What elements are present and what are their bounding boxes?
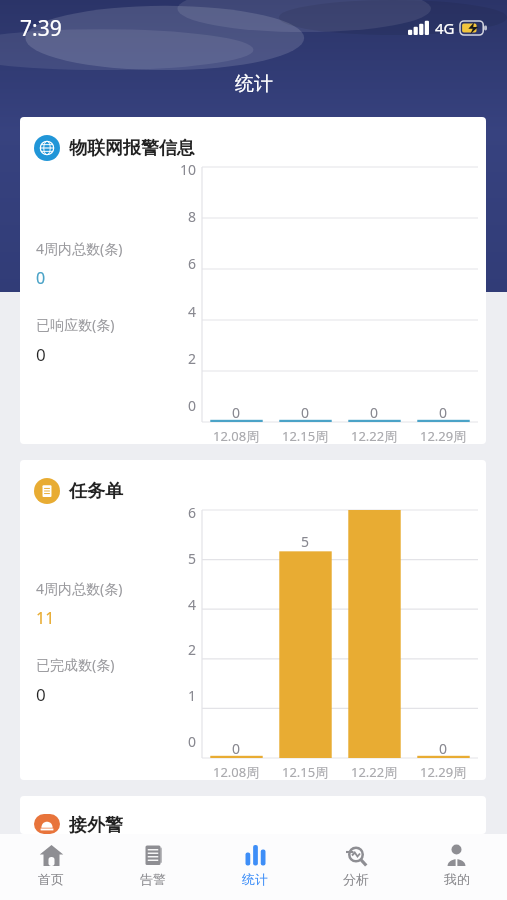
staticText: 12.15周 xyxy=(282,763,329,781)
button[interactable]: 我的 xyxy=(406,834,507,900)
other: 分析 xyxy=(343,843,368,868)
staticText: 0 xyxy=(439,403,448,422)
staticText: 2 xyxy=(170,349,196,368)
staticText: 物联网报警信息 xyxy=(69,137,195,160)
staticText: 0 xyxy=(232,403,241,422)
staticText: 0 xyxy=(170,396,196,415)
staticText: 8 xyxy=(170,207,196,226)
staticText: 4周内总数(条) xyxy=(36,579,123,598)
staticText: 10 xyxy=(170,160,196,179)
staticText: 12.08周 xyxy=(213,763,260,781)
staticText: 告警 xyxy=(140,871,166,887)
other: 告警 xyxy=(141,843,166,868)
staticText: 4周内总数(条) xyxy=(36,239,123,258)
staticText: 已完成数(条) xyxy=(36,655,115,674)
staticText: 6 xyxy=(170,503,196,522)
other: 我的 xyxy=(444,843,469,868)
staticText: 12.22周 xyxy=(351,763,398,781)
staticText: 1 xyxy=(170,686,196,705)
button[interactable]: 首页 xyxy=(0,834,102,900)
staticText: 4 xyxy=(170,595,196,614)
button[interactable]: 物联网报警信息 xyxy=(20,117,486,444)
staticText: 12.29周 xyxy=(420,427,467,445)
staticText: 0 xyxy=(301,403,310,422)
staticText: 统计 xyxy=(235,72,273,96)
staticText: 我的 xyxy=(444,871,470,887)
other: 统计 xyxy=(242,843,267,868)
staticText: 11 xyxy=(36,607,55,629)
button[interactable]: 统计 xyxy=(204,834,305,900)
staticText: 4G xyxy=(435,18,455,38)
staticText: 统计 xyxy=(242,871,268,887)
staticText: 6 xyxy=(170,254,196,273)
staticText: 5 xyxy=(301,532,310,551)
button[interactable]: 告警 xyxy=(102,834,204,900)
staticText: 0 xyxy=(170,732,196,751)
staticText: 0 xyxy=(36,267,46,289)
staticText: 4 xyxy=(170,302,196,321)
staticText: 接外警 xyxy=(69,814,123,834)
button[interactable]: 接外警 xyxy=(20,796,486,834)
staticText: 0 xyxy=(439,739,448,758)
staticText: 首页 xyxy=(38,871,64,887)
staticText: 12.15周 xyxy=(282,427,329,445)
staticText: 0 xyxy=(370,403,379,422)
staticText: 分析 xyxy=(343,871,369,887)
staticText: 12.22周 xyxy=(351,427,398,445)
staticText: 任务单 xyxy=(69,480,123,503)
staticText: 已响应数(条) xyxy=(36,315,115,334)
other: 首页 xyxy=(39,843,64,868)
staticText: 2 xyxy=(170,640,196,659)
button[interactable]: 分析 xyxy=(305,834,406,900)
staticText: 12.29周 xyxy=(420,763,467,781)
staticText: 0 xyxy=(36,343,46,366)
staticText: 12.08周 xyxy=(213,427,260,445)
button[interactable]: 任务单 xyxy=(20,460,486,780)
staticText: 7:39 xyxy=(20,14,62,43)
staticText: 0 xyxy=(36,683,46,706)
staticText: 0 xyxy=(232,739,241,758)
staticText: 5 xyxy=(170,549,196,568)
